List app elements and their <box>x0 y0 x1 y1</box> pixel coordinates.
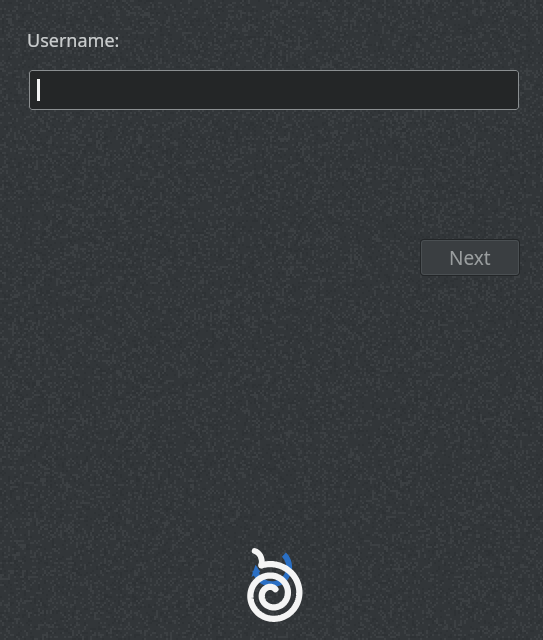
button[interactable]: Restart <box>232 544 312 622</box>
staticText: Username: <box>27 28 120 53</box>
staticText: Next <box>449 245 491 271</box>
button[interactable] <box>29 70 519 110</box>
button[interactable]: Next <box>421 240 519 275</box>
